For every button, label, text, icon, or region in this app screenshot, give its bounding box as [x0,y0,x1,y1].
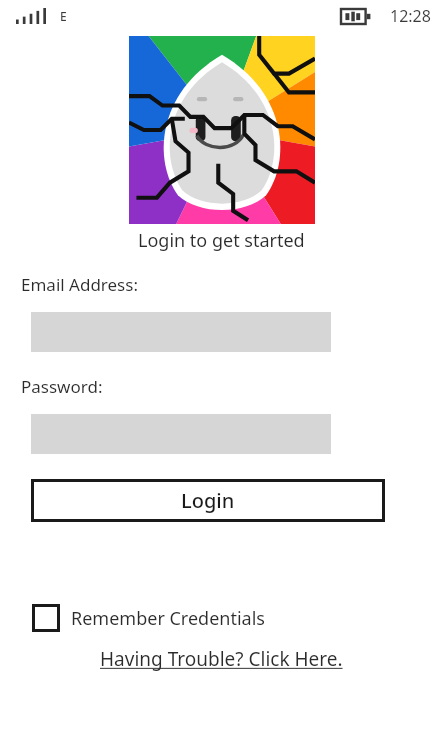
staticText: Email Address: [21,273,138,296]
staticText: Password: [21,375,103,398]
staticText: 12:28 [390,5,431,27]
staticText: E [60,8,67,24]
button[interactable]: Having Trouble? Click Here. [100,646,343,672]
staticText: Remember Credentials [71,606,265,631]
button[interactable]: Remember Credentials [32,604,265,632]
button[interactable]: Login [31,479,385,522]
staticText: Login [181,487,235,514]
staticText: Login to get started [138,228,305,253]
